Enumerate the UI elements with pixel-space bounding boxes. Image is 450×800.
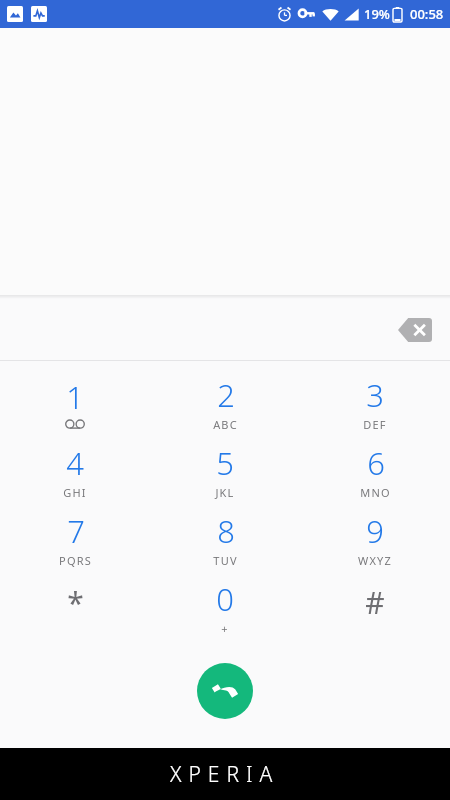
staticText: 3 (366, 374, 384, 416)
button[interactable]: 7 (0, 505, 150, 573)
staticText: 6 (367, 442, 385, 484)
staticText: 2 (217, 374, 235, 416)
button[interactable]: 0 (150, 573, 300, 641)
staticText: 5 (216, 442, 234, 484)
staticText: + (221, 621, 229, 636)
button[interactable]: 6 (300, 437, 450, 505)
staticText: MNO (360, 485, 391, 500)
staticText: PQRS (59, 553, 92, 568)
staticText: 19% (364, 5, 390, 23)
staticText: 1 (66, 376, 84, 418)
staticText: JKL (215, 485, 235, 500)
button[interactable]: 3 (300, 369, 450, 437)
staticText: 0 (216, 578, 234, 620)
button[interactable]: # (300, 573, 450, 641)
staticText: 7 (67, 510, 85, 552)
button[interactable]: Backspace (392, 310, 438, 350)
button[interactable]: * (0, 573, 150, 641)
staticText: XPERIA (170, 760, 280, 789)
button[interactable]: 9 (300, 505, 450, 573)
staticText: TUV (213, 553, 238, 568)
staticText: 9 (366, 510, 384, 552)
staticText: * (67, 582, 84, 623)
button[interactable]: 4 (0, 437, 150, 505)
button[interactable]: 2 (150, 369, 300, 437)
button[interactable]: 5 (150, 437, 300, 505)
staticText: 00:58 (410, 5, 444, 23)
staticText: 8 (217, 510, 235, 552)
staticText: 4 (66, 442, 84, 484)
button[interactable]: Call (197, 663, 253, 719)
staticText: # (365, 582, 385, 623)
button[interactable]: 8 (150, 505, 300, 573)
button[interactable]: 1 (0, 369, 150, 437)
staticText: GHI (63, 485, 87, 500)
staticText: ABC (213, 417, 238, 432)
staticText: WXYZ (358, 553, 392, 568)
staticText: DEF (363, 417, 387, 432)
